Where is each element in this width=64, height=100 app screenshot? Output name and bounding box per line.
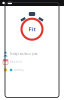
button[interactable]: Schedule — [0, 58, 64, 66]
button[interactable]: Activity — [0, 66, 64, 74]
staticText: Activity — [14, 68, 23, 72]
staticText: Schedule — [10, 60, 23, 64]
staticText: Today's workout plan — [10, 52, 38, 56]
staticText: Fit — [28, 26, 35, 33]
button[interactable]: Today's workout plan — [0, 50, 64, 58]
